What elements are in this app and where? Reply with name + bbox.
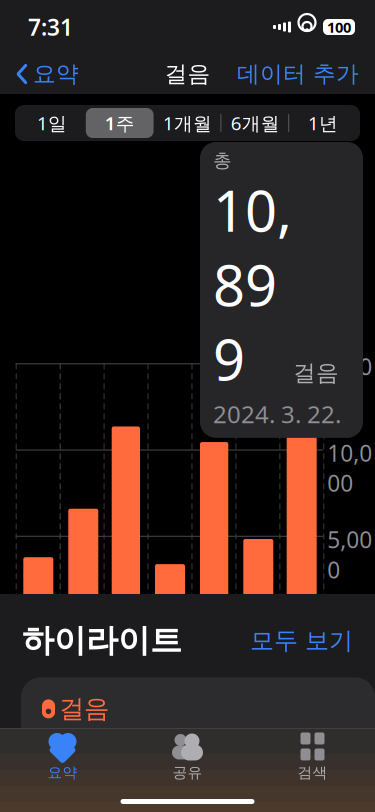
staticText: 화: [145, 633, 165, 658]
staticText: 1주: [105, 111, 135, 135]
staticText: 계산할 수 없음: [182, 676, 340, 706]
button[interactable]: 1주: [86, 108, 154, 138]
button[interactable]: 1일: [18, 108, 86, 138]
button[interactable]: 요약: [0, 724, 125, 781]
staticText: 금: [277, 633, 297, 658]
staticText: 일: [58, 633, 78, 658]
staticText: 걸음: [164, 60, 210, 88]
staticText: 목: [233, 633, 253, 658]
button[interactable]: 걸음: [21, 677, 375, 755]
staticText: 걸음: [293, 359, 339, 387]
staticText: 요약: [33, 60, 79, 88]
staticText: 1개월: [163, 111, 212, 135]
staticText: 데이터 추가: [237, 60, 359, 88]
staticText: 토: [13, 633, 33, 658]
staticText: 공유: [172, 763, 202, 781]
staticText: 모두 보기: [250, 626, 353, 655]
staticText: 걸음: [59, 693, 109, 724]
button[interactable]: 공유: [125, 724, 250, 781]
staticText: 0: [327, 611, 340, 641]
staticText: 요약: [47, 763, 77, 781]
staticText: 1일: [37, 111, 67, 135]
button[interactable]: 추세: [15, 665, 360, 717]
staticText: 하이라이트: [22, 621, 182, 660]
staticText: 100: [327, 17, 351, 37]
staticText: 15,000: [327, 351, 372, 411]
staticText: 추세: [35, 676, 83, 706]
staticText: 6개월: [231, 111, 280, 135]
staticText: 7:31: [28, 12, 73, 42]
staticText: 올해 평균 걸음 수가 2023년보다 늘었습니다.: [41, 740, 358, 812]
button[interactable]: 1년: [289, 108, 357, 138]
staticText: 총: [213, 149, 232, 172]
button[interactable]: 1개월: [154, 108, 221, 138]
button[interactable]: 데이터 추가: [231, 52, 365, 96]
button[interactable]: 6개월: [221, 108, 289, 138]
staticText: 1년: [308, 111, 338, 135]
staticText: 2024. 3. 22.: [213, 398, 341, 430]
staticText: 5,000: [327, 524, 372, 585]
staticText: 월: [102, 633, 122, 658]
staticText: 10,899: [213, 173, 292, 396]
button[interactable]: 검색: [250, 724, 375, 781]
button[interactable]: 요약: [10, 52, 85, 96]
button[interactable]: 모두 보기: [250, 622, 353, 659]
staticText: 10,000: [327, 438, 372, 498]
staticText: 검색: [297, 763, 327, 781]
